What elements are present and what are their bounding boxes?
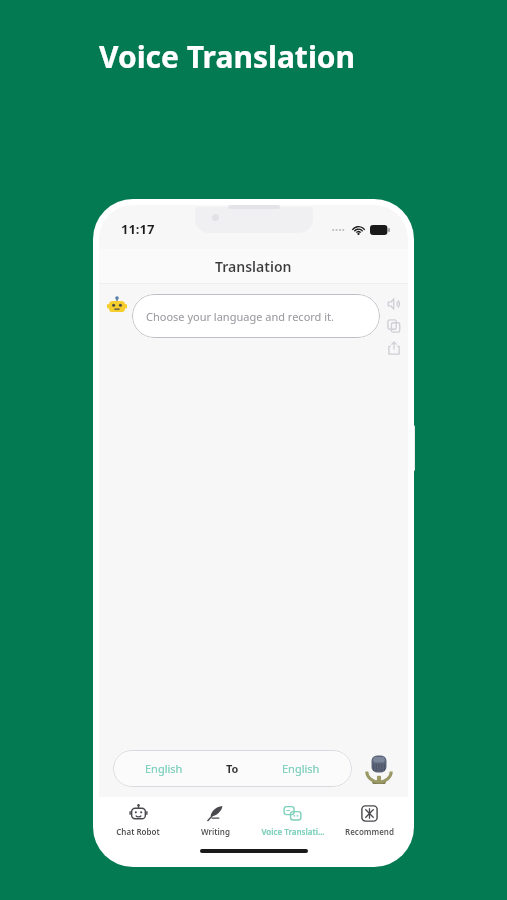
staticText: Chat Robot	[116, 826, 160, 837]
staticText: Recommend	[345, 826, 394, 837]
staticText: Writing	[201, 826, 230, 837]
button[interactable]: Share	[386, 340, 402, 356]
button[interactable]: Play audio	[386, 296, 402, 312]
staticText: Choose your language and record it.	[146, 309, 334, 324]
staticText: Voice Translati...	[261, 826, 325, 837]
button[interactable]: Writing	[177, 797, 254, 841]
button[interactable]: Choose your language and record it.	[132, 294, 380, 338]
button[interactable]: Copy	[386, 318, 402, 334]
button[interactable]: Recommend	[331, 797, 408, 841]
button[interactable]: Voice Translati...	[254, 797, 331, 841]
staticText: Voice Translation	[99, 36, 356, 77]
staticText: English	[145, 761, 183, 776]
staticText: English	[282, 761, 320, 776]
button[interactable]: English	[113, 761, 215, 776]
staticText: 11:17	[121, 220, 155, 238]
button[interactable]: English	[249, 761, 352, 776]
button[interactable]: Record voice	[362, 752, 396, 786]
button[interactable]: English	[113, 750, 352, 787]
staticText: To	[226, 761, 239, 776]
staticText: Translation	[215, 257, 292, 276]
button[interactable]: Chat Robot	[99, 797, 177, 841]
